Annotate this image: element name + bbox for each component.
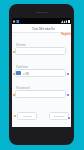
staticText: Taxi Mirabello [32,26,55,31]
other: Signal, wifi and battery [61,20,70,23]
button[interactable] [15,90,66,98]
staticText: Telefono [16,65,29,69]
staticText: Utente [16,43,26,47]
staticText: Esempio [23,115,32,118]
button[interactable] [15,47,66,55]
staticText: Registrati [61,32,71,36]
button[interactable]: +30 [15,69,66,77]
staticText: Conferma [54,115,65,118]
button[interactable]: Conferma [49,112,69,120]
staticText: +30 [23,71,29,76]
button[interactable]: Esempio [17,112,37,120]
staticText: Password [16,86,30,90]
button[interactable]: Registrati [61,32,71,36]
